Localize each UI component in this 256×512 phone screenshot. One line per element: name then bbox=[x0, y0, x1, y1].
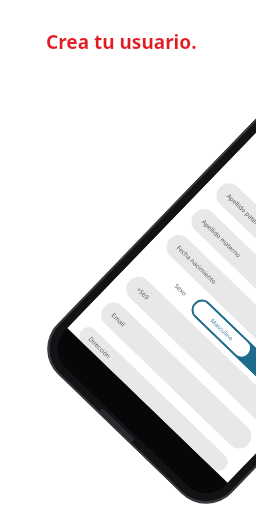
button[interactable]: +569 bbox=[121, 271, 256, 428]
button[interactable]: Email bbox=[96, 297, 256, 454]
button[interactable]: Apellido materno bbox=[186, 204, 256, 360]
staticText: Apellido paterno bbox=[225, 191, 256, 233]
staticText: Crea tu usuario. bbox=[46, 29, 197, 55]
button[interactable]: Apellido paterno bbox=[211, 178, 256, 334]
button[interactable]: Masculino bbox=[187, 295, 256, 405]
staticText: Sexo bbox=[173, 281, 189, 298]
staticText: Apellido materno bbox=[200, 217, 243, 260]
staticText: Dirección bbox=[87, 334, 113, 360]
staticText: Fecha nacimiento bbox=[175, 243, 219, 286]
button[interactable]: Dirección bbox=[76, 323, 232, 474]
staticText: Masculino bbox=[209, 317, 235, 343]
button[interactable]: Fecha nacimiento bbox=[161, 230, 256, 386]
staticText: Email bbox=[109, 311, 128, 329]
staticText: +569 bbox=[134, 285, 151, 302]
